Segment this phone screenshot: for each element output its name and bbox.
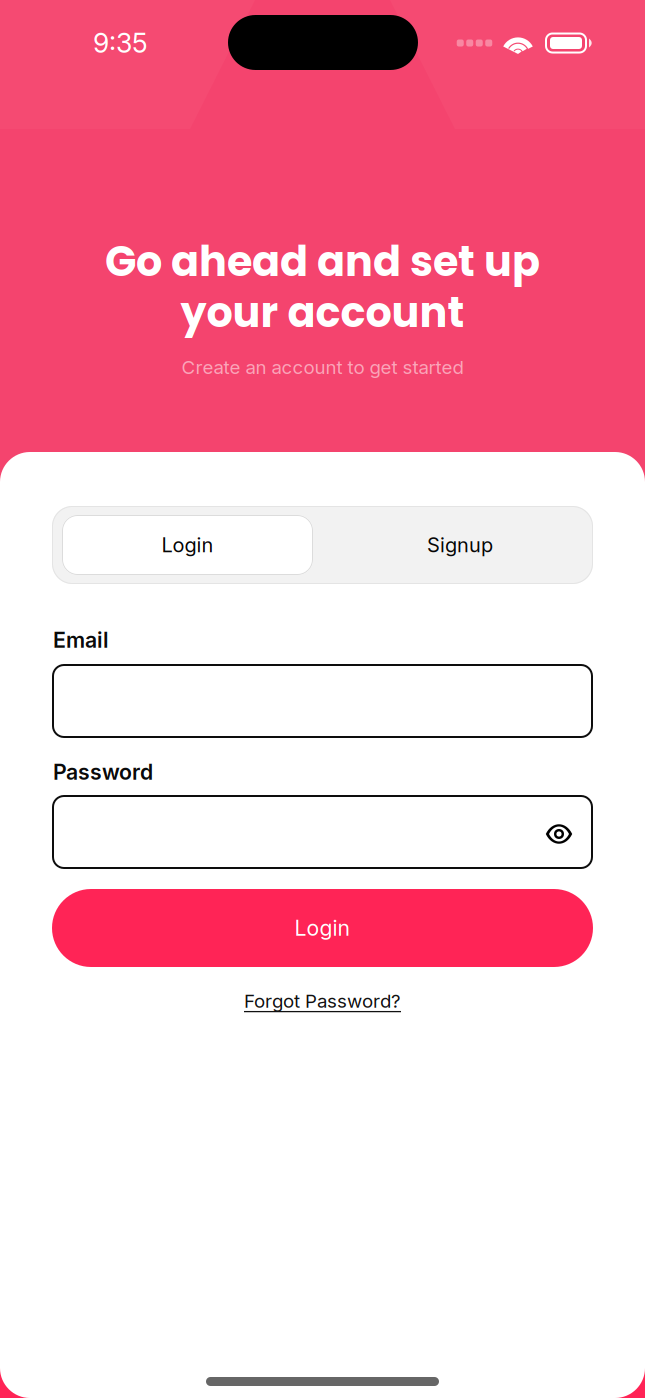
staticText: Login — [161, 533, 213, 557]
staticText: Login — [294, 915, 350, 941]
staticText: Password — [53, 759, 153, 785]
staticText: Email — [53, 627, 109, 653]
button[interactable]: Signup — [325, 515, 595, 575]
staticText: Create an account to get started — [181, 356, 463, 379]
staticText: 9:35 — [93, 27, 148, 59]
staticText: Forgot Password? — [244, 990, 401, 1012]
staticText: your account — [180, 284, 464, 341]
button[interactable]: Login — [62, 515, 313, 575]
button[interactable]: Login — [52, 889, 593, 967]
button[interactable]: Forgot Password? — [52, 986, 593, 1016]
staticText: Go ahead and set up — [105, 233, 540, 290]
button[interactable]: Show password — [528, 797, 590, 871]
staticText: Signup — [427, 533, 493, 557]
